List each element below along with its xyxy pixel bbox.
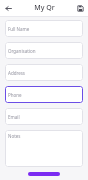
staticText: Full Name: [8, 26, 30, 32]
button[interactable]: Back: [2, 2, 14, 14]
button[interactable]: Save contact: [28, 172, 60, 176]
button[interactable]: Email: [5, 108, 83, 125]
button[interactable]: Organisation: [5, 42, 83, 59]
button[interactable]: Save: [74, 2, 86, 14]
button[interactable]: Address: [5, 64, 83, 81]
staticText: My Qr: [34, 3, 55, 13]
staticText: Phone: [8, 92, 22, 98]
staticText: Address: [8, 70, 26, 76]
button[interactable]: Full Name: [5, 20, 83, 37]
button[interactable]: Phone: [5, 86, 83, 103]
staticText: Notes: [8, 133, 21, 139]
staticText: Organisation: [8, 48, 36, 54]
staticText: Email: [8, 114, 20, 120]
button[interactable]: Notes: [5, 130, 83, 167]
